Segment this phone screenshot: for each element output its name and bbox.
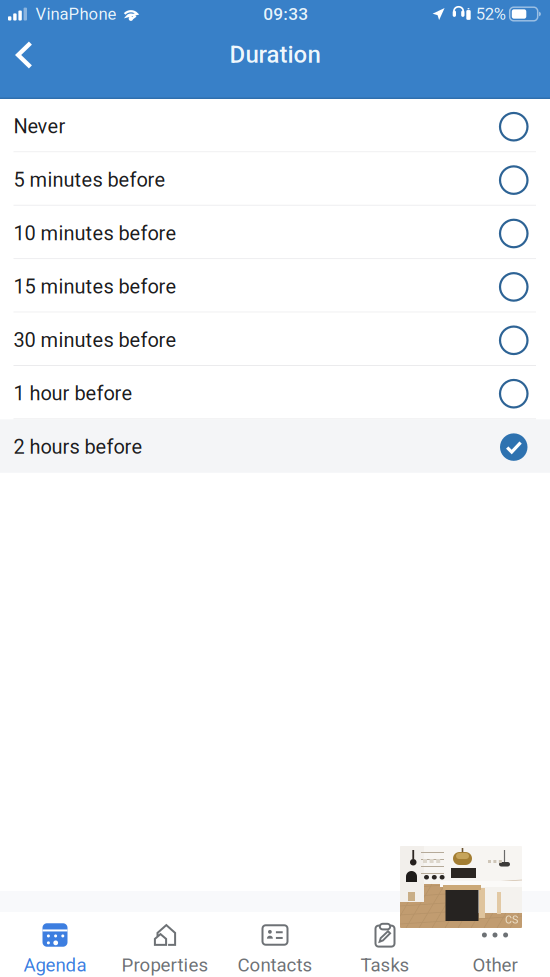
staticText: 1 hour before [13,382,132,405]
staticText: Other [472,954,517,976]
staticText: 5 minutes before [13,168,165,192]
button[interactable]: Agenda [0,912,110,977]
button[interactable]: Contacts [220,912,330,977]
staticText: Properties [121,954,208,976]
staticText: Duration [229,40,320,68]
button[interactable]: 2 hours before [0,419,550,473]
button[interactable]: 1 hour before [0,366,550,419]
staticText: Agenda [23,954,86,976]
staticText: Never [13,115,65,138]
staticText: CS [505,913,518,926]
button[interactable]: 30 minutes before [0,313,550,366]
staticText: Contacts [237,954,312,976]
staticText: 09:33 [263,4,308,24]
staticText: Tasks [360,954,409,976]
staticText: 10 minutes before [13,222,176,245]
staticText: VinaPhone [35,4,116,24]
button[interactable]: Other [440,912,550,977]
button[interactable]: 5 minutes before [0,152,550,206]
button[interactable]: Never [0,99,550,152]
button[interactable]: Tasks [330,912,440,977]
button[interactable]: 10 minutes before [0,206,550,259]
staticText: 2 hours before [13,435,142,459]
button[interactable]: Properties [110,912,220,977]
staticText: 30 minutes before [13,328,176,352]
staticText: 52% [476,4,506,24]
button[interactable]: 15 minutes before [0,259,550,313]
staticText: 15 minutes before [13,275,176,298]
button[interactable]: Back [0,28,50,81]
